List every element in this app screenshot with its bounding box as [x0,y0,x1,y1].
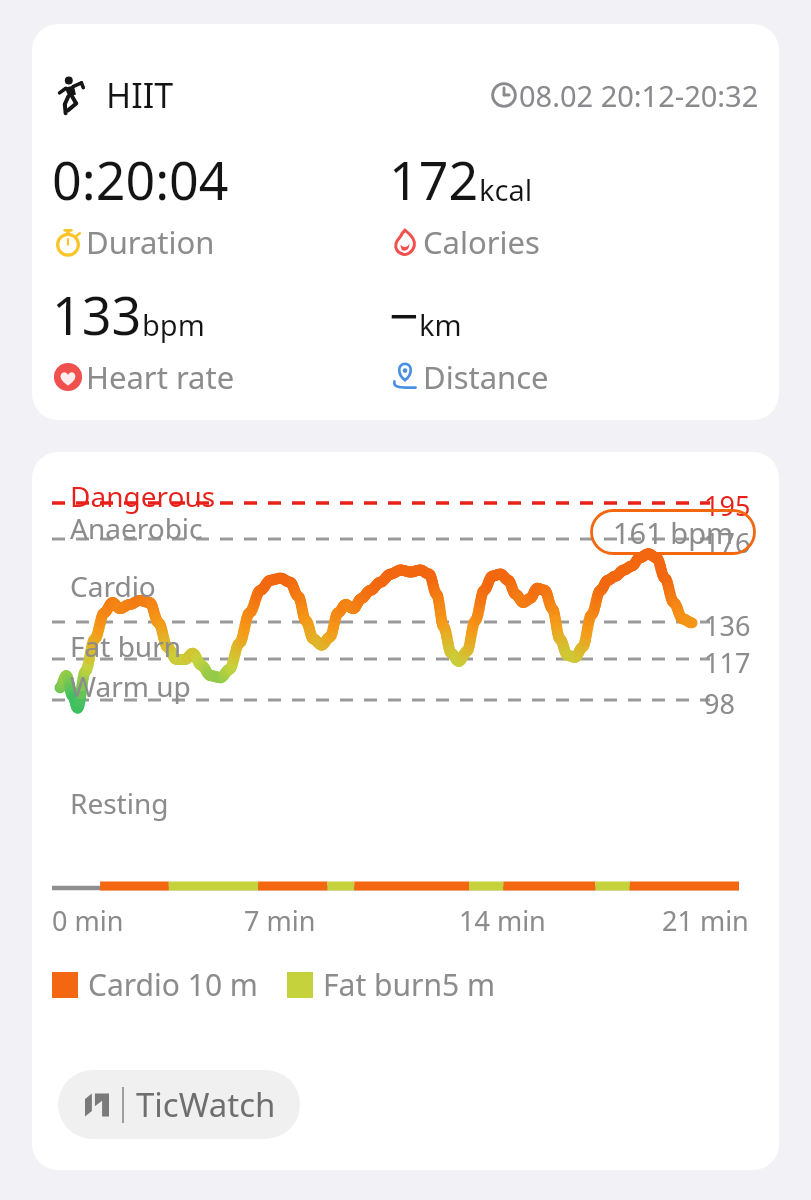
staticText: Resting [70,784,169,822]
other: TicWatch [82,1090,112,1120]
staticText: 14 min [459,902,546,939]
staticText: 21 min [662,902,749,939]
staticText: 117 [704,644,751,681]
staticText: 176 [704,524,751,561]
button[interactable]: 133 [52,279,382,398]
staticText: Cardio [70,567,156,605]
button[interactable]: Fat burn5 m [287,964,495,1005]
staticText: 136 [704,607,751,644]
staticText: 0:20:04 [52,144,229,215]
staticText: Calories [423,221,540,263]
other: Workout type [52,74,94,116]
button[interactable]: Cardio 10 m [52,964,258,1005]
staticText: Distance [423,356,549,398]
staticText: 133 [52,279,142,350]
staticText: Anaerobic [70,509,203,547]
staticText: Warm up [70,667,191,705]
staticText: 195 [704,487,751,524]
staticText: Dangerous [70,477,216,515]
staticText: 08.02 20:12-20:32 [519,76,759,115]
button[interactable]: TicWatch [58,1070,300,1139]
staticText: 172 [389,144,479,215]
staticText: HIIT [106,72,174,118]
staticText: Fat burn5 m [323,964,495,1005]
staticText: 161 bpm [613,513,734,552]
staticText: bpm [142,305,205,344]
staticText: 98 [704,685,735,722]
staticText: Fat burn [70,627,182,665]
staticText: km [419,305,462,344]
staticText: Duration [86,221,215,263]
staticText: Heart rate [86,356,235,398]
staticText: 7 min [244,902,316,939]
button[interactable]: 0:20:04 [52,144,382,263]
staticText: Cardio 10 m [88,964,258,1005]
staticText: − [389,279,419,350]
staticText: kcal [479,170,533,209]
staticText: TicWatch [136,1082,276,1127]
button[interactable]: − [389,279,719,398]
button[interactable]: 172 [389,144,719,263]
staticText: 0 min [52,902,124,939]
